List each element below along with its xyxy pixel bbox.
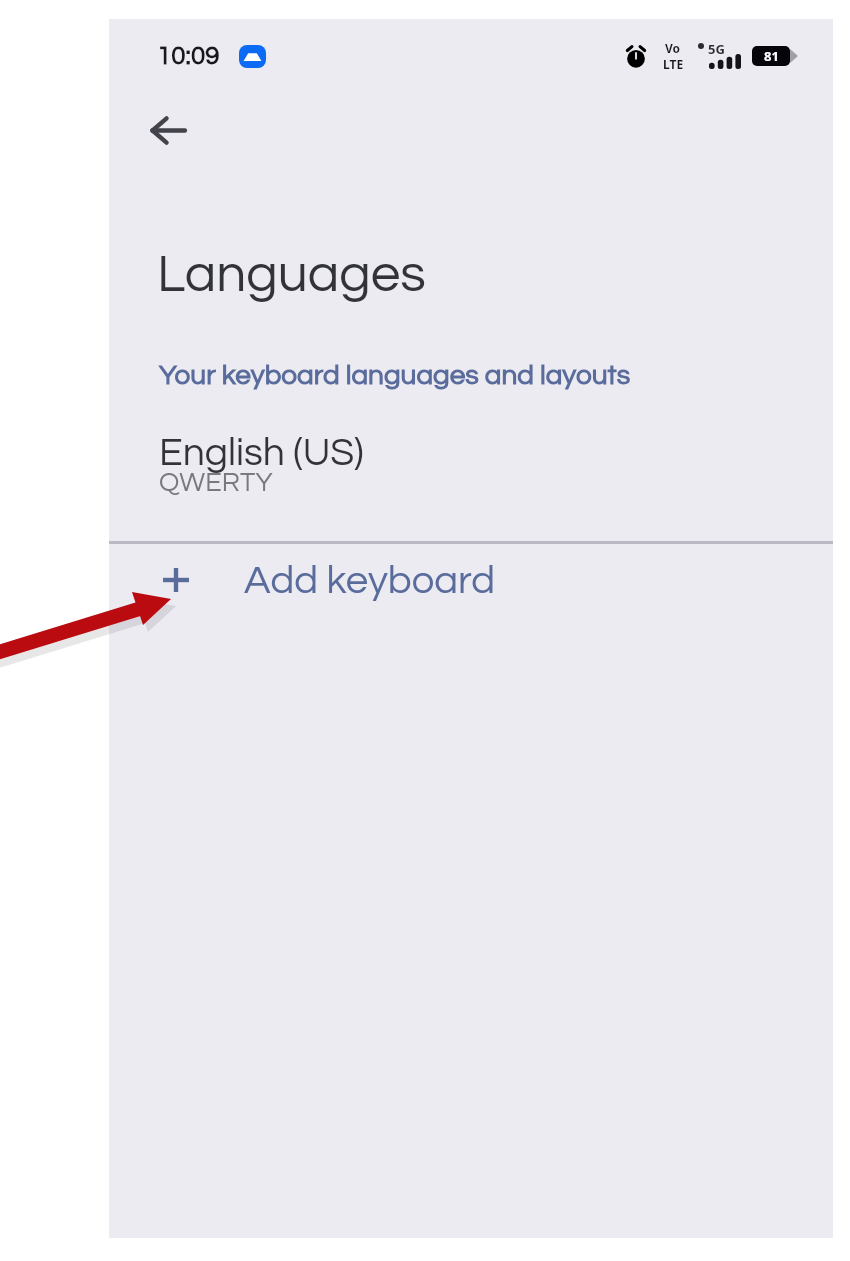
staticText: Your keyboard languages and layouts <box>159 361 631 390</box>
button[interactable]: English (US) <box>109 423 833 538</box>
staticText: Add keyboard <box>244 560 496 601</box>
staticText: Vo <box>665 40 681 56</box>
staticText: LTE <box>663 56 684 72</box>
button[interactable]: Back <box>134 96 202 164</box>
staticText: 81 <box>764 47 779 65</box>
staticText: QWERTY <box>159 469 273 497</box>
staticText: 10:09 <box>157 43 220 70</box>
staticText: 5G <box>708 40 725 58</box>
staticText: English (US) <box>159 433 364 473</box>
button[interactable]: Add keyboard <box>109 534 833 626</box>
staticText: Languages <box>157 248 426 303</box>
